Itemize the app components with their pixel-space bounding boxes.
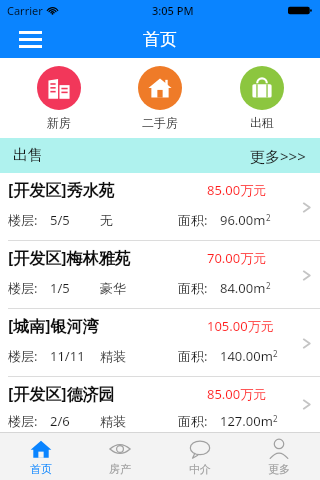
- staticText: [开发区]梅林雅苑: [8, 247, 131, 269]
- button[interactable]: 出租: [219, 64, 305, 132]
- staticText: 楼层:: [8, 279, 38, 297]
- staticText: 面积:: [178, 279, 208, 297]
- staticText: 出售: [13, 146, 43, 165]
- staticText: 面积:: [178, 211, 208, 229]
- staticText: 房产: [109, 462, 131, 476]
- staticText: 2/6: [50, 412, 70, 430]
- button[interactable]: [城南]银河湾: [0, 309, 320, 377]
- staticText: 2: [266, 212, 271, 223]
- staticText: 更多>>>: [250, 146, 306, 166]
- staticText: 出租: [250, 115, 274, 130]
- staticText: 85.00万元: [207, 181, 267, 199]
- staticText: 105.00万元: [207, 317, 274, 335]
- button[interactable]: 新房: [16, 64, 102, 132]
- staticText: 70.00万元: [207, 249, 267, 267]
- button[interactable]: Menu: [10, 20, 50, 58]
- staticText: 首页: [143, 29, 177, 50]
- staticText: [开发区]德济园: [8, 383, 115, 405]
- staticText: 3:05 PM: [152, 3, 194, 18]
- staticText: 楼层:: [8, 211, 38, 229]
- button[interactable]: 二手房: [117, 64, 203, 132]
- button[interactable]: 更多>>>: [236, 138, 320, 173]
- button[interactable]: 房产: [81, 433, 159, 480]
- staticText: 楼层:: [8, 347, 38, 365]
- staticText: 豪华: [100, 280, 126, 296]
- staticText: 11/11: [50, 347, 85, 365]
- button[interactable]: [开发区]德济园: [0, 377, 320, 432]
- staticText: 1/5: [50, 279, 70, 297]
- staticText: 85.00万元: [207, 385, 267, 403]
- staticText: 更多: [268, 462, 290, 476]
- staticText: 84.00m: [220, 279, 266, 297]
- staticText: 精装: [100, 348, 126, 364]
- staticText: 96.00m: [220, 211, 266, 229]
- staticText: 无: [100, 212, 113, 228]
- staticText: 2: [273, 413, 278, 424]
- staticText: 2: [266, 280, 271, 291]
- staticText: [城南]银河湾: [8, 315, 99, 337]
- button[interactable]: [开发区]秀水苑: [0, 173, 320, 241]
- button[interactable]: [开发区]梅林雅苑: [0, 241, 320, 309]
- button[interactable]: 首页: [2, 433, 80, 480]
- staticText: 127.00m: [220, 412, 273, 430]
- staticText: 中介: [189, 462, 211, 476]
- staticText: 首页: [30, 462, 52, 476]
- staticText: 二手房: [142, 115, 178, 130]
- staticText: [开发区]秀水苑: [8, 179, 115, 201]
- staticText: Carrier: [7, 3, 43, 18]
- staticText: 5/5: [50, 211, 70, 229]
- staticText: 面积:: [178, 347, 208, 365]
- staticText: 楼层:: [8, 412, 38, 430]
- button[interactable]: 更多: [240, 433, 318, 480]
- staticText: 面积:: [178, 412, 208, 430]
- staticText: 140.00m: [220, 347, 273, 365]
- button[interactable]: 中介: [161, 433, 239, 480]
- staticText: 新房: [47, 115, 71, 130]
- staticText: 精装: [100, 413, 126, 429]
- staticText: 2: [273, 348, 278, 359]
